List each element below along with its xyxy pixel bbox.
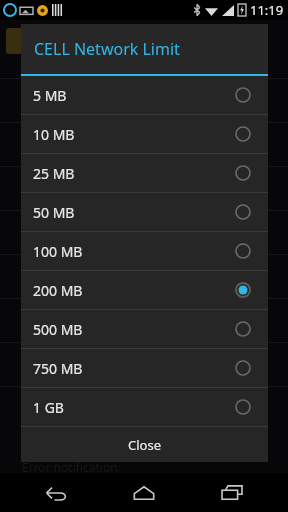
staticText: Close — [128, 436, 161, 454]
button[interactable]: 25 MB — [21, 154, 268, 192]
staticText: 10 MB — [33, 125, 230, 144]
button[interactable]: 200 MB — [21, 271, 268, 309]
button[interactable]: 5 MB — [21, 76, 268, 114]
staticText: 200 MB — [33, 281, 230, 300]
staticText: 500 MB — [33, 320, 230, 339]
button[interactable]: 750 MB — [21, 349, 268, 387]
staticText: 25 MB — [33, 164, 230, 183]
staticText: 5 MB — [33, 86, 230, 105]
button[interactable]: Recent apps — [200, 473, 264, 512]
staticText: 11:19 — [250, 1, 284, 19]
button[interactable]: 50 MB — [21, 193, 268, 231]
button[interactable]: Close — [21, 427, 268, 462]
staticText: 100 MB — [33, 242, 230, 261]
button[interactable]: 1 GB — [21, 388, 268, 426]
button[interactable]: 10 MB — [21, 115, 268, 153]
button[interactable]: 100 MB — [21, 232, 268, 270]
staticText: Error notification — [22, 459, 118, 475]
button[interactable]: Home — [112, 473, 176, 512]
staticText: CELL Network Limit — [34, 38, 180, 60]
button[interactable]: 500 MB — [21, 310, 268, 348]
button[interactable]: Back — [24, 473, 88, 512]
staticText: 1 GB — [33, 398, 230, 417]
staticText: 50 MB — [33, 203, 230, 222]
staticText: 750 MB — [33, 359, 230, 378]
